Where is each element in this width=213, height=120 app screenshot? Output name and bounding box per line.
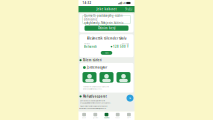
staticText: Jeke kabınet [96,7,116,11]
staticText: Qyzmet [93,117,98,119]
button[interactable]: Jәrdemaqy 3 [116,72,130,83]
staticText: Mártebe [84,43,90,45]
button[interactable]: Tolyq [101,51,112,55]
staticText: Tólem túrleri [83,58,102,62]
button[interactable]: Shyǧý [124,6,133,12]
staticText: LTE [122,1,125,5]
staticText: ➤ [129,97,131,100]
button[interactable]: Kabınet [101,111,112,120]
staticText: arnaǧa júginińiz nemese qonyraý shalyńyz… [79,102,110,104]
button[interactable]: Jәrdemaqy 2 [99,72,113,83]
button[interactable]: Habar [112,111,123,120]
staticText: Tólemder týraly tolyq aqparat alý úshin [83,86,109,88]
staticText: Habar [115,117,120,119]
button[interactable]: Mәzir [123,111,134,120]
button[interactable]: Ótinim berý [84,25,128,31]
staticText: Áleýmettik tólemder týraly [87,37,126,40]
staticText: jańalyqtar sonda bolady: tólem, aqparat. [79,108,105,109]
button[interactable]: Qyzmet [90,111,101,120]
staticText: Eger sizde suraq bolsa, bizdin resmı [79,100,104,102]
staticText: Telegram arnamyzǧa jazylyńyz. Barlyq [79,105,107,107]
staticText: Shyǧý [125,7,132,11]
staticText: Jalpy soma [122,43,129,45]
staticText: Qurmetti paıdalanýshy, sizdin ótinisiniz [84,14,123,21]
staticText: Ótinim berý [98,26,115,30]
button[interactable]: Jәrdemaqy 1 [82,72,96,83]
staticText: Kabınet [104,117,109,119]
staticText: Belsendi [84,45,97,48]
staticText: Mәzir [127,117,131,119]
staticText: Mańyzdy aqparat [83,95,107,98]
staticText: Basty [82,117,86,119]
button[interactable]: Basty [78,111,90,120]
staticText: Tolyq [104,52,108,54]
staticText: tómendegi siltemeni basyńyz. [83,88,102,90]
staticText: Jәrdemaqylar [87,66,107,69]
staticText: 14:32 [82,1,91,5]
staticText: qabyldandy. Nátıjesin kútiniz. [84,21,124,25]
staticText: 128 500 ₸ [113,45,129,48]
button[interactable]: Telegram [126,95,133,102]
